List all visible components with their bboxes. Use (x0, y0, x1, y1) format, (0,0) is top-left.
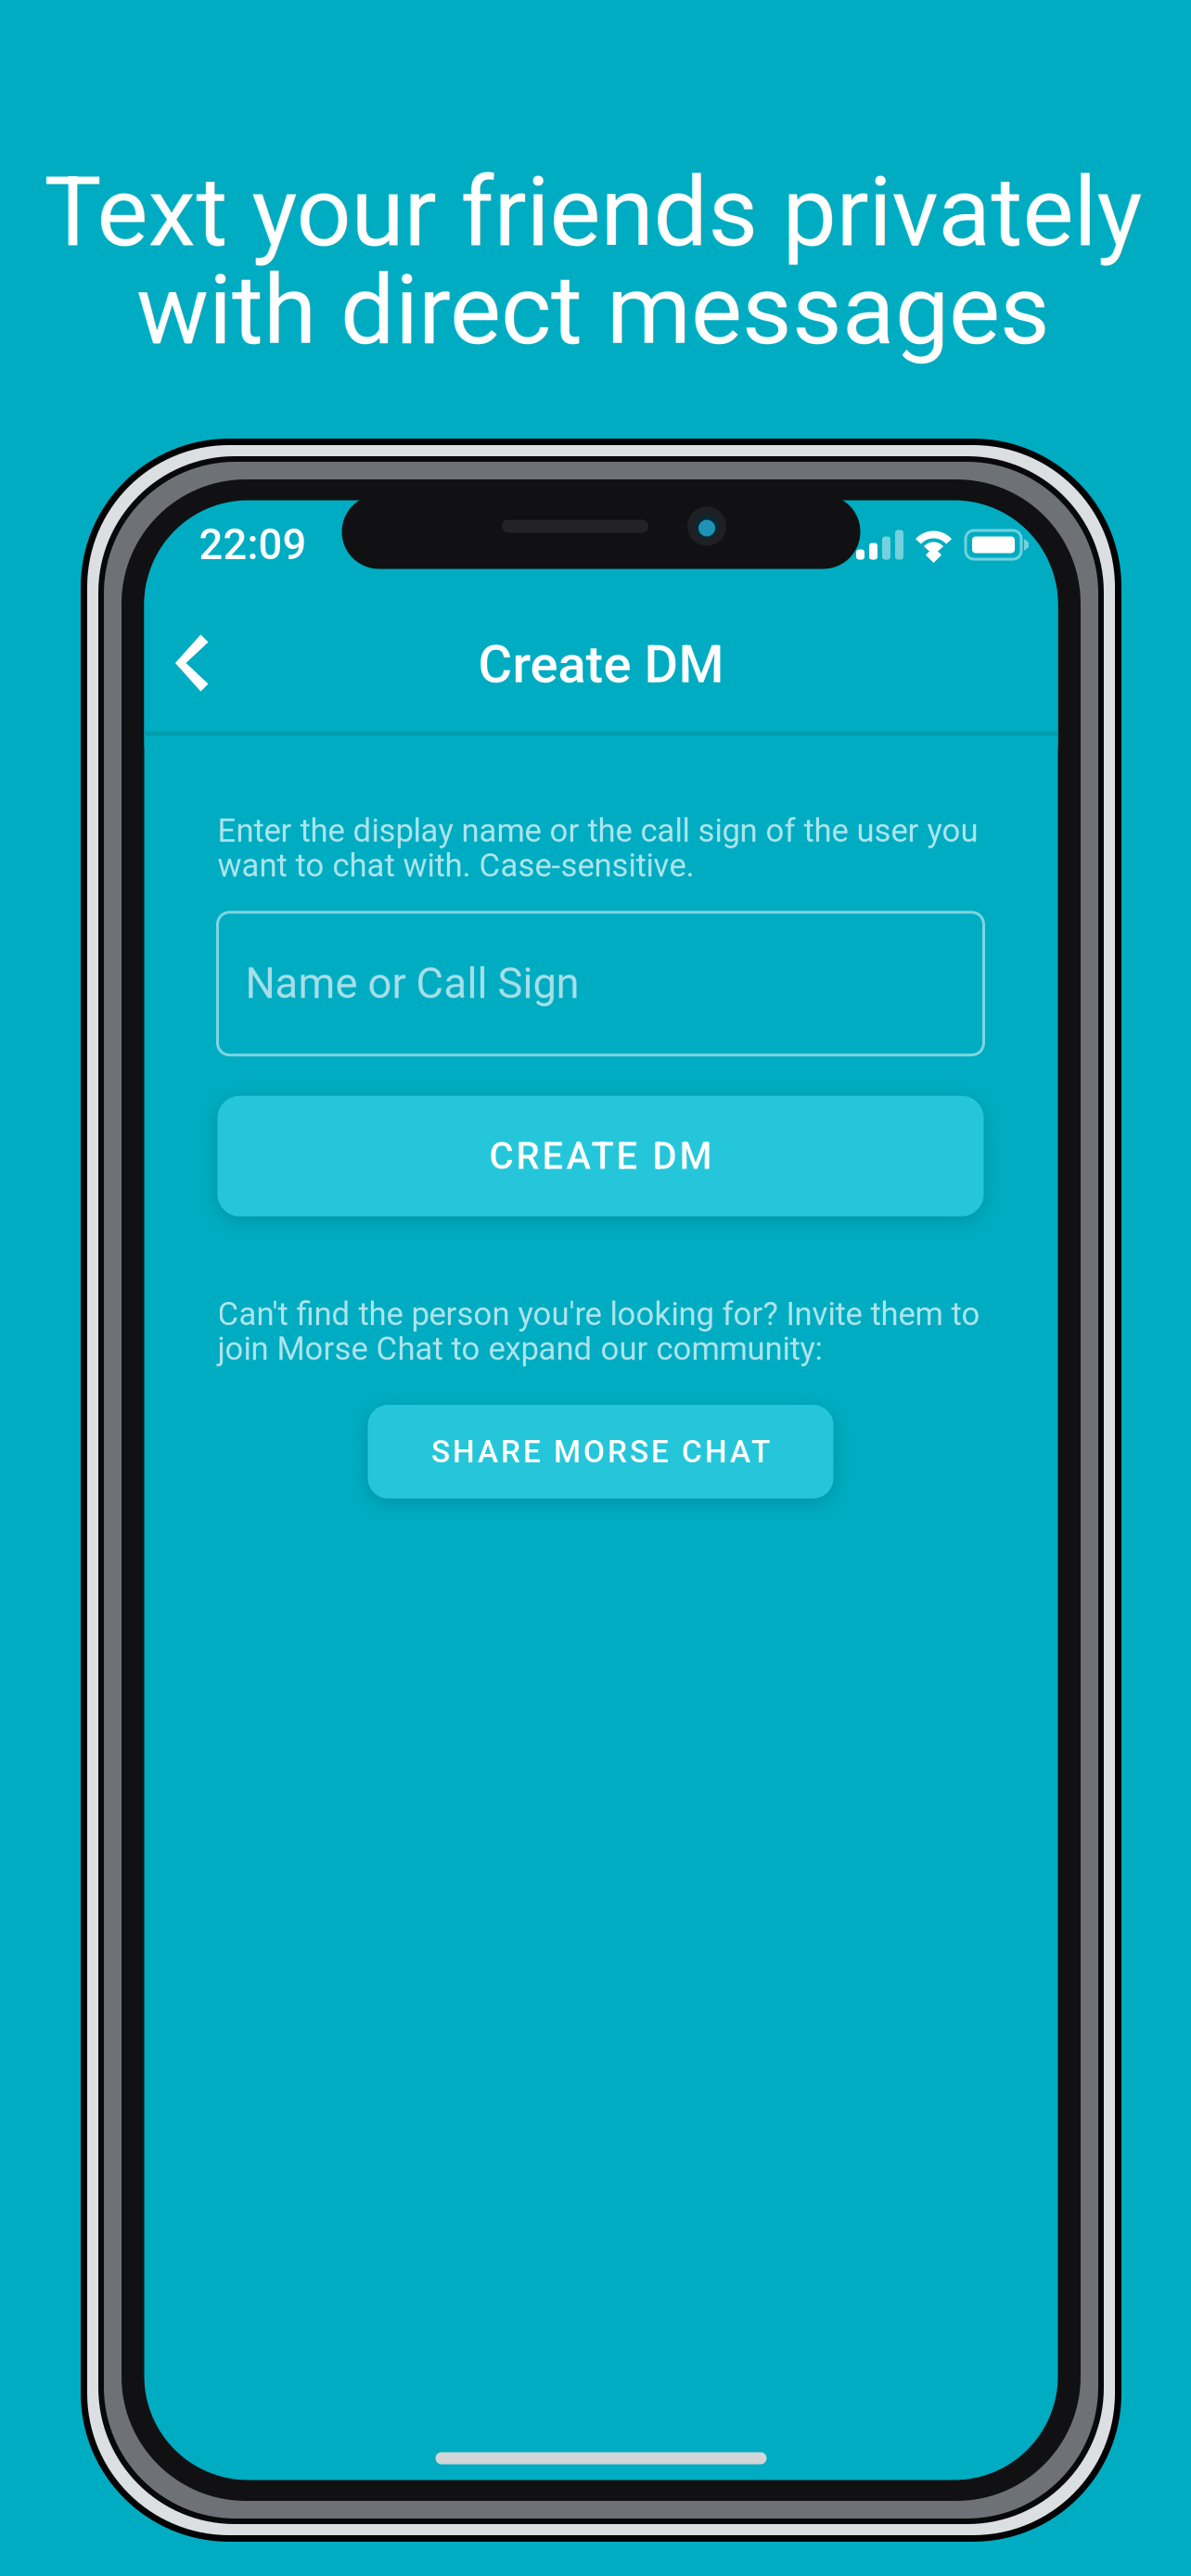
staticText: 22:09 (199, 520, 307, 569)
staticText: Enter the display name or the call sign … (218, 812, 978, 884)
staticText: Can't find the person you're looking for… (218, 1295, 980, 1368)
staticText: Name or Call Sign (245, 959, 579, 1008)
button[interactable]: SHARE MORSE CHAT (368, 1405, 833, 1498)
staticText: Create DM (478, 634, 724, 695)
button[interactable]: CREATE DM (218, 1096, 984, 1216)
staticText: CREATE DM (489, 1134, 712, 1178)
staticText: Text your friends privately with direct … (44, 156, 1142, 367)
staticText: SHARE MORSE CHAT (431, 1434, 770, 1470)
button[interactable]: Back (150, 620, 239, 709)
